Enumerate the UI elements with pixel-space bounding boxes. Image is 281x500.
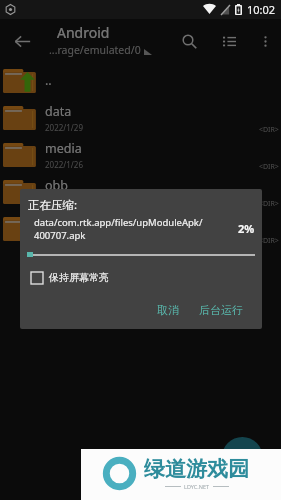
- staticText: ...rage/emulated/0: [49, 43, 141, 57]
- button[interactable]: data: [0, 210, 281, 247]
- staticText: media: [45, 140, 82, 157]
- button[interactable]: Search: [169, 21, 209, 61]
- staticText: obb: [45, 177, 68, 194]
- button[interactable]: 取消: [152, 301, 184, 319]
- staticText: 2022/1/20: [45, 233, 83, 244]
- staticText: LDYC.NET: [184, 483, 210, 490]
- staticText: <DIR>: [259, 125, 279, 135]
- staticText: 正在压缩:: [28, 197, 78, 213]
- staticText: data/com.rtk.app/files/upModuleApk/ 4007…: [34, 216, 238, 242]
- staticText: ..: [45, 72, 52, 89]
- staticText: 10:02: [247, 2, 276, 17]
- staticText: 取消: [157, 303, 179, 317]
- staticText: 2022/1/26: [45, 159, 83, 170]
- staticText: 2022/1/29: [45, 122, 83, 133]
- staticText: 保持屏幕常亮: [49, 271, 109, 284]
- staticText: 后台运行: [199, 303, 243, 317]
- staticText: 2%: [238, 221, 255, 236]
- staticText: data: [45, 214, 72, 231]
- staticText: <DIR>: [259, 199, 279, 209]
- button[interactable]: data: [0, 99, 281, 136]
- button[interactable]: media: [0, 136, 281, 173]
- staticText: <DIR>: [259, 236, 279, 246]
- staticText: Android: [57, 23, 110, 42]
- button[interactable]: ..: [0, 62, 281, 99]
- button[interactable]: obb: [0, 173, 281, 210]
- staticText: 2022/1/26: [45, 196, 83, 207]
- button[interactable]: Back: [4, 23, 40, 59]
- button[interactable]: 保持屏幕常亮: [31, 271, 262, 284]
- staticText: data: [45, 103, 72, 120]
- staticText: <DIR>: [259, 162, 279, 172]
- button[interactable]: More options: [249, 25, 281, 57]
- button[interactable]: View mode: [209, 21, 249, 61]
- staticText: 绿道游戏园: [144, 456, 249, 482]
- button[interactable]: 后台运行: [194, 301, 248, 319]
